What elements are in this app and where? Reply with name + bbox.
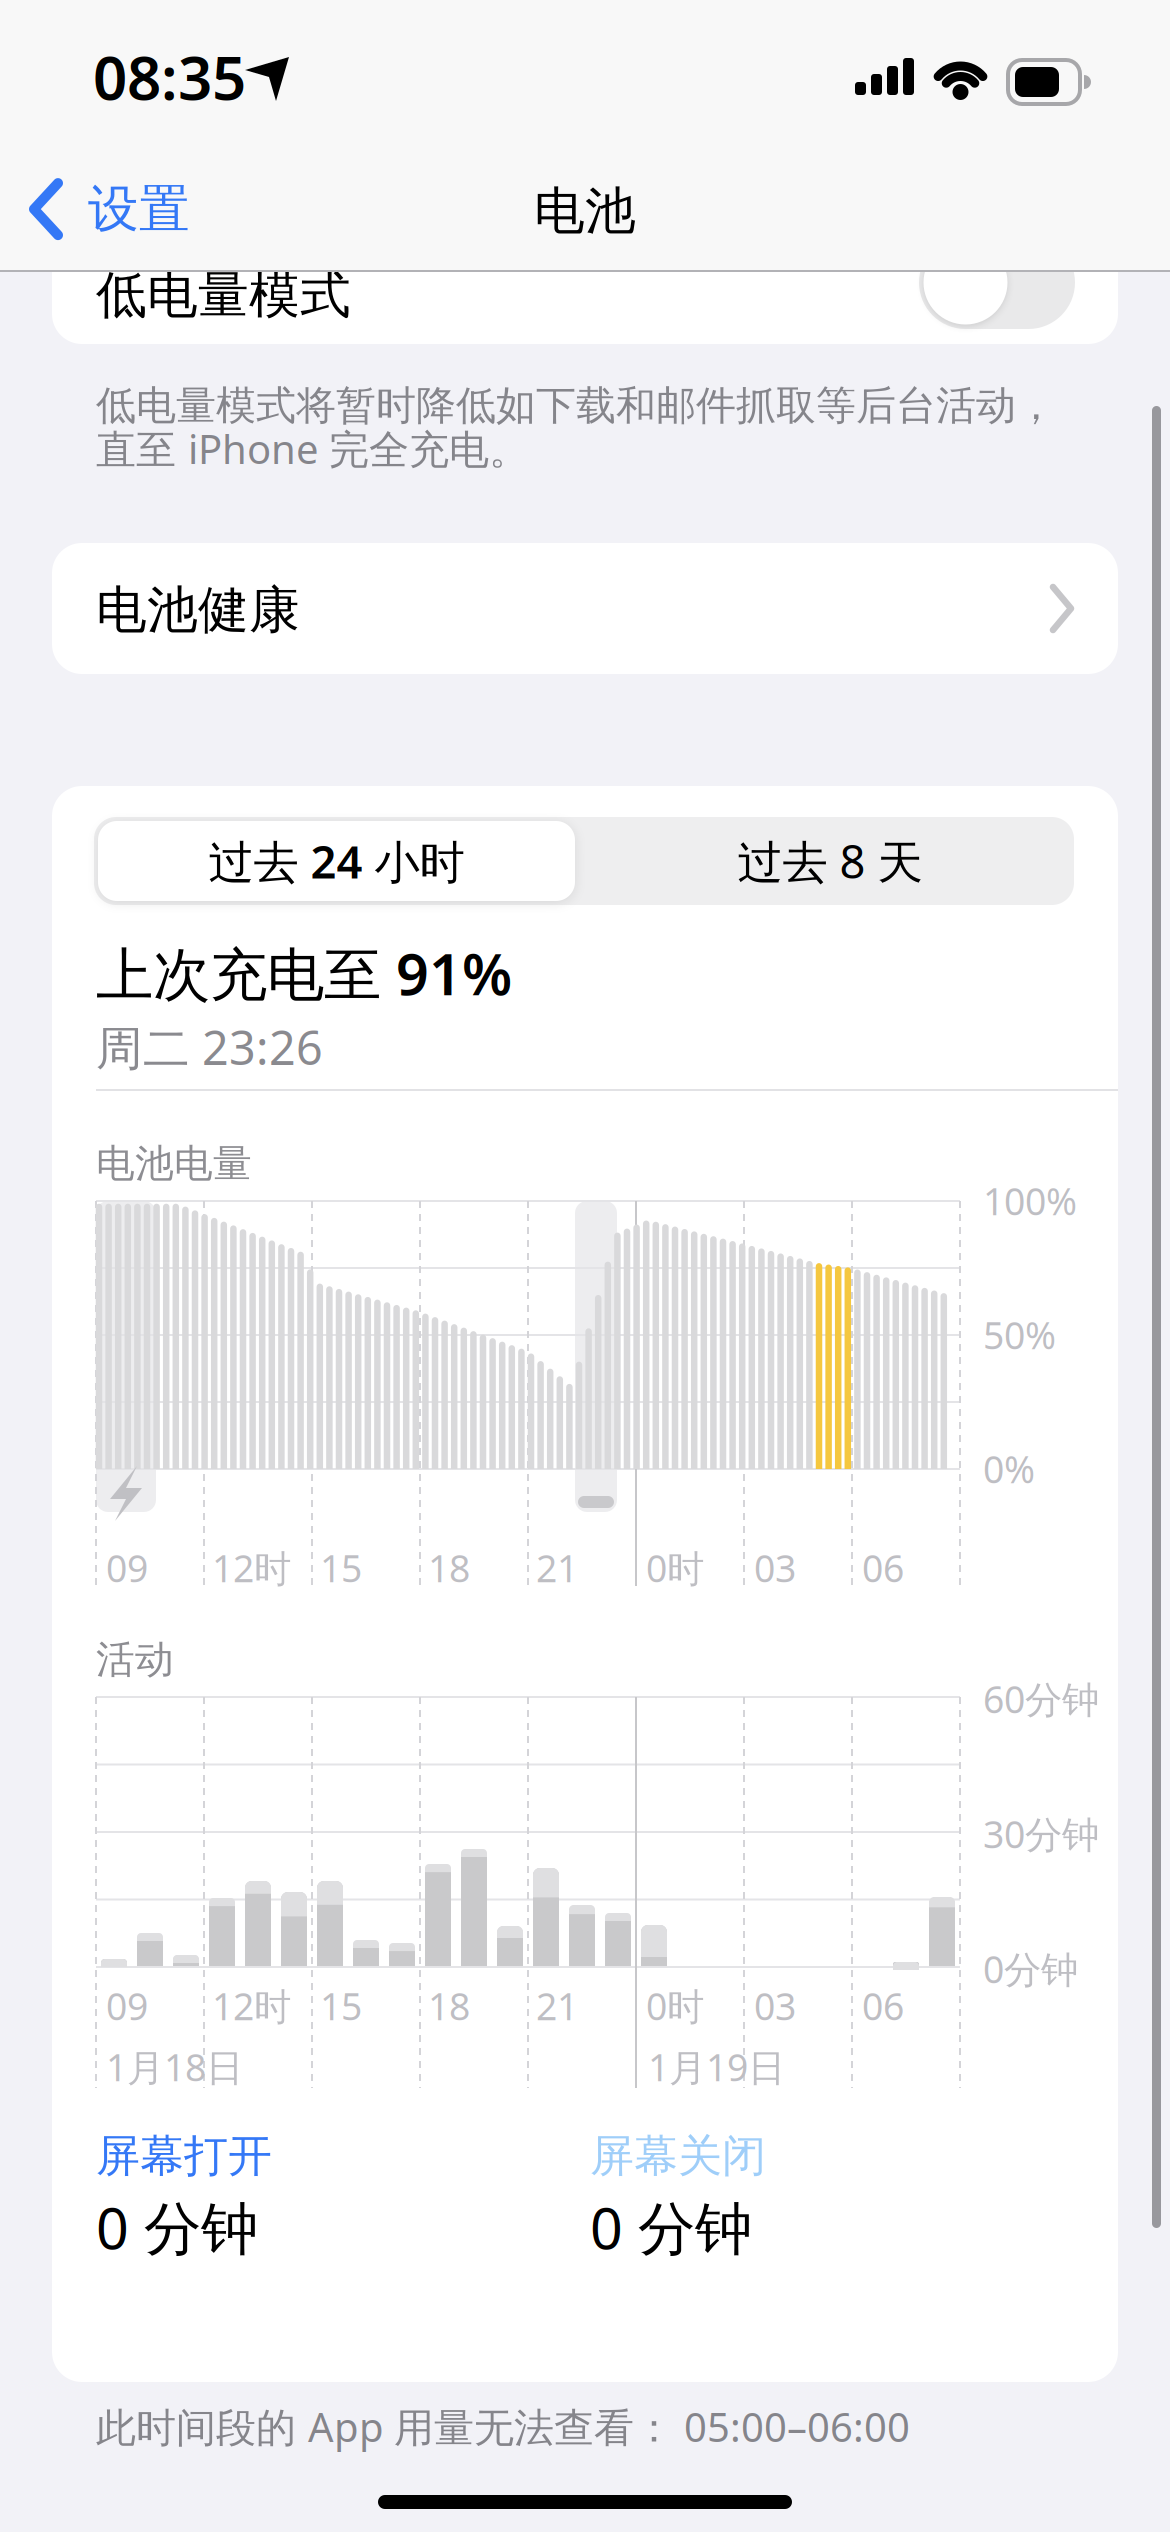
staticText: 0 分钟 xyxy=(590,2189,752,2265)
staticText: 0% xyxy=(983,1444,1035,1494)
staticText: 15 xyxy=(320,1981,362,2031)
staticText: 设置 xyxy=(88,178,190,240)
staticText: 100% xyxy=(983,1176,1077,1226)
staticText: 18 xyxy=(428,1981,470,2031)
staticText: 0时 xyxy=(646,1981,704,2031)
staticText: 1月18日 xyxy=(106,2042,243,2092)
staticText: 03 xyxy=(754,1981,796,2031)
staticText: 09 xyxy=(106,1981,148,2031)
staticText: 30分钟 xyxy=(983,1809,1099,1859)
staticText: 21 xyxy=(536,1981,578,2031)
button[interactable]: 过去 24 小时 xyxy=(98,821,575,901)
staticText: 低电量模式 xyxy=(96,264,351,326)
staticText: 上次充电至 91% xyxy=(96,935,512,1011)
staticText: 06 xyxy=(862,1981,904,2031)
staticText: 活动 xyxy=(96,1636,174,1683)
staticText: 08:35 xyxy=(93,37,246,117)
staticText: 1月19日 xyxy=(648,2042,785,2092)
staticText: 直至 iPhone 完全充电。 xyxy=(96,422,529,475)
staticText: 0时 xyxy=(646,1543,704,1593)
staticText: 03 xyxy=(754,1543,796,1593)
staticText: 50% xyxy=(983,1310,1056,1360)
staticText: 0分钟 xyxy=(983,1944,1078,1994)
staticText: 15 xyxy=(320,1543,362,1593)
staticText: 电池 xyxy=(534,180,636,242)
staticText: 12时 xyxy=(212,1981,291,2031)
staticText: 06 xyxy=(862,1543,904,1593)
staticText: 21 xyxy=(536,1543,578,1593)
button[interactable]: 电池健康 xyxy=(52,543,1118,674)
staticText: 电池电量 xyxy=(96,1140,252,1187)
button[interactable]: 低电量模式 xyxy=(919,236,1075,329)
button[interactable]: 过去 8 天 xyxy=(590,821,1070,901)
staticText: 09 xyxy=(106,1543,148,1593)
staticText: 过去 24 小时 xyxy=(208,831,464,891)
staticText: 18 xyxy=(428,1543,470,1593)
button[interactable]: 设置 xyxy=(32,178,190,240)
staticText: 低电量模式将暂时降低如下载和邮件抓取等后台活动， xyxy=(96,381,1056,430)
staticText: 0 分钟 xyxy=(96,2189,258,2265)
staticText: 屏幕关闭 xyxy=(590,2129,766,2183)
staticText: 60分钟 xyxy=(983,1674,1099,1724)
staticText: 12时 xyxy=(212,1543,291,1593)
staticText: 屏幕打开 xyxy=(96,2129,272,2183)
staticText: 此时间段的 App 用量无法查看： 05:00–06:00 xyxy=(96,2400,910,2453)
staticText: 过去 8 天 xyxy=(737,831,922,891)
staticText: 周二 23:26 xyxy=(96,1016,323,1078)
staticText: 电池健康 xyxy=(96,579,300,641)
